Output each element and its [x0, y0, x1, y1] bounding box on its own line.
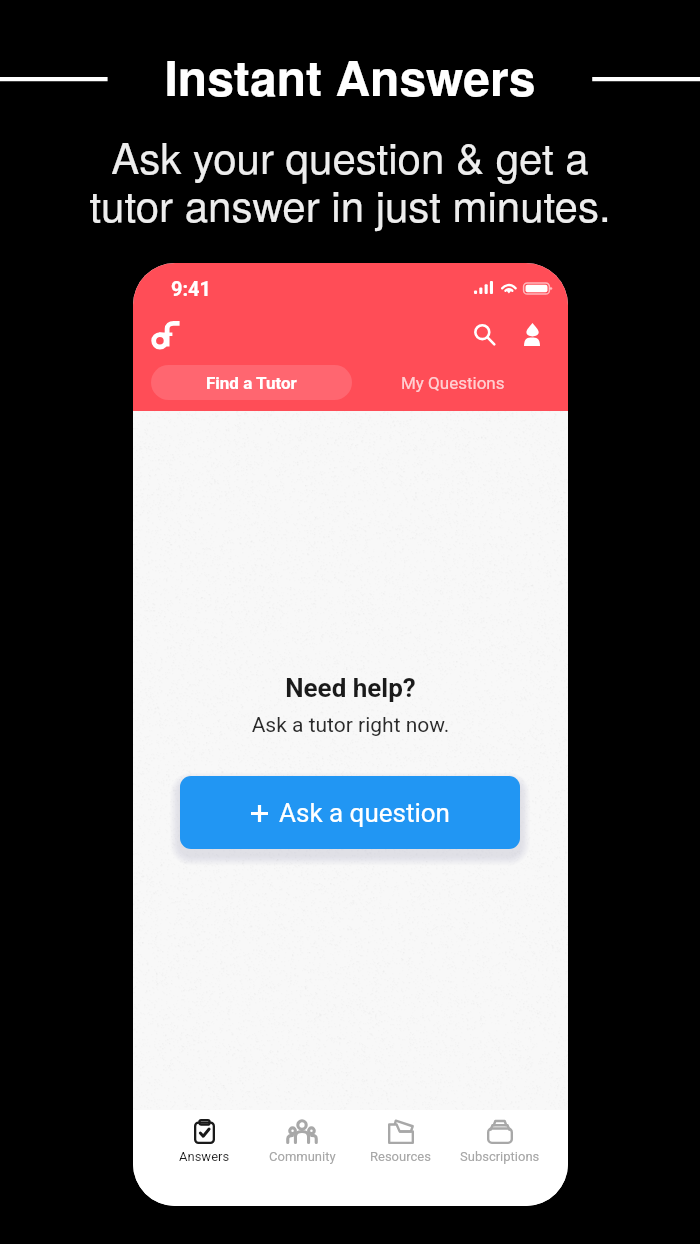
staticText: Resources — [370, 1149, 431, 1164]
staticText: Find a Tutor — [206, 373, 297, 393]
button[interactable]: Ask a question — [180, 776, 520, 849]
staticText: Ask a tutor right now. — [133, 713, 568, 738]
staticText: Instant Answers — [0, 42, 700, 111]
button[interactable]: Subscriptions — [450, 1110, 549, 1164]
staticText: Ask your question & get a tutor answer i… — [0, 126, 700, 234]
button[interactable]: My Questions — [352, 365, 553, 400]
button[interactable]: Resources — [351, 1110, 450, 1164]
staticText: Ask a question — [279, 798, 450, 828]
staticText: Subscriptions — [460, 1149, 540, 1164]
staticText: My Questions — [401, 373, 505, 393]
button[interactable]: Answers — [155, 1110, 253, 1164]
button[interactable]: Search — [468, 318, 502, 352]
button[interactable]: Community — [253, 1110, 351, 1164]
button[interactable]: Find a Tutor — [151, 365, 352, 400]
staticText: Answers — [179, 1149, 230, 1164]
staticText: Community — [269, 1149, 336, 1164]
staticText: 9:41 — [171, 277, 212, 300]
button[interactable]: Home — [144, 314, 186, 356]
staticText: Need help? — [133, 673, 568, 703]
button[interactable]: Profile — [515, 314, 549, 355]
